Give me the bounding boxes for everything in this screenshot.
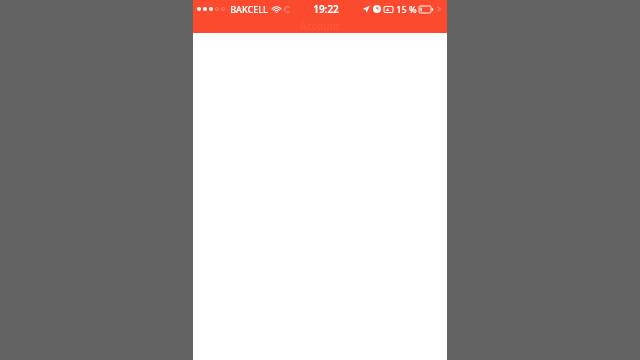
button[interactable]: More: [435, 5, 443, 13]
staticText: Account: [300, 19, 340, 33]
staticText: 19:22: [313, 2, 339, 16]
staticText: BAKCELL: [230, 3, 268, 15]
staticText: 15 %: [396, 3, 417, 15]
